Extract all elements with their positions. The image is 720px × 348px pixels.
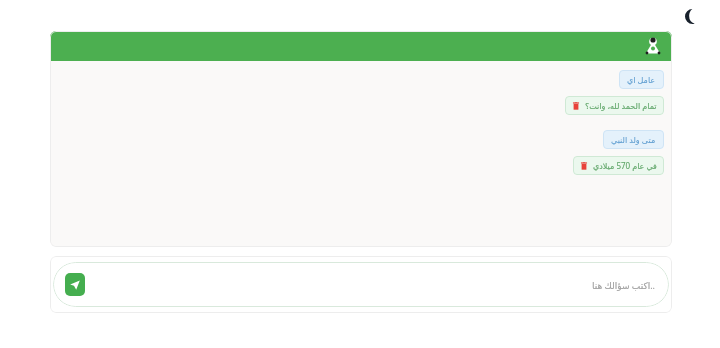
button[interactable]: Delete message	[565, 96, 664, 115]
button[interactable]: متى ولد النبي	[603, 130, 664, 149]
staticText: في عام 570 ميلادي	[593, 160, 657, 171]
button[interactable]: Delete message	[573, 156, 664, 175]
button[interactable]: Toggle dark mode	[678, 2, 706, 30]
staticText: عامل اي	[627, 74, 656, 85]
staticText: متى ولد النبي	[611, 134, 656, 145]
button[interactable]: Send	[53, 262, 669, 307]
button[interactable]: عامل اي	[619, 70, 664, 89]
button[interactable]: Send	[65, 273, 85, 296]
button[interactable]: Delete message	[571, 101, 580, 110]
staticText: اكتب سؤالك هنا..	[591, 279, 655, 291]
button[interactable]: Assistant avatar	[641, 34, 665, 58]
button[interactable]: Delete message	[579, 161, 588, 170]
staticText: تمام الحمد لله، وانت؟	[585, 100, 657, 111]
